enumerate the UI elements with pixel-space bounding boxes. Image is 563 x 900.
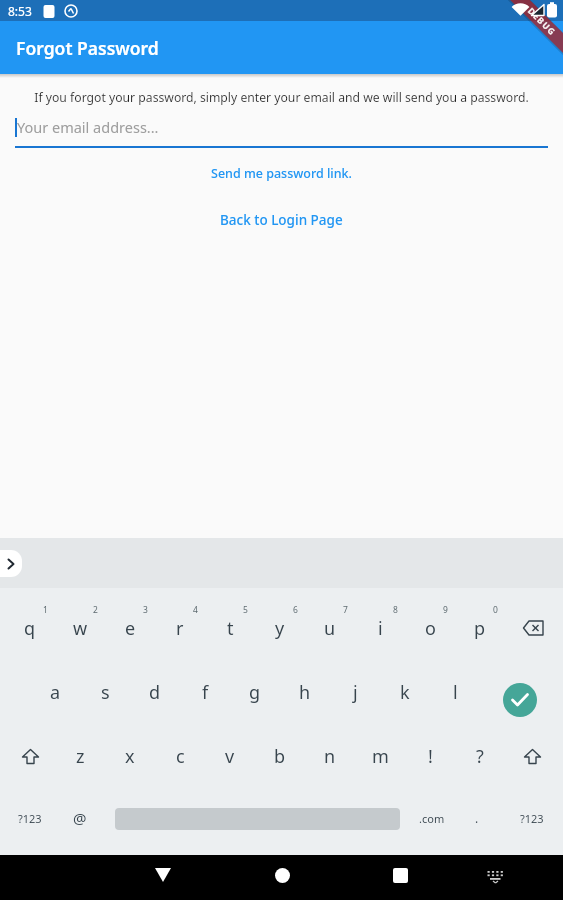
staticText: c (176, 744, 185, 769)
staticText: q (24, 616, 36, 641)
staticText: . (475, 810, 479, 826)
button[interactable]: t (206, 604, 254, 652)
staticText: u (324, 616, 336, 641)
staticText: n (324, 744, 336, 769)
button[interactable]: v (206, 732, 254, 780)
staticText: ?123 (520, 811, 544, 826)
button[interactable]: g (231, 668, 279, 716)
staticText: h (299, 680, 311, 705)
staticText: y (275, 616, 285, 641)
button[interactable]: ? (456, 732, 504, 780)
button[interactable]: ! (406, 732, 454, 780)
button[interactable]: @ (56, 794, 104, 842)
staticText: m (372, 744, 389, 769)
staticText: Send me password link. (211, 165, 352, 182)
button[interactable]: y (256, 604, 304, 652)
staticText: 4 (193, 604, 198, 616)
staticText: Forgot Password (16, 36, 159, 60)
staticText: d (149, 680, 161, 705)
button[interactable]: s (81, 668, 129, 716)
button[interactable]: m (356, 732, 404, 780)
button[interactable]: w (56, 604, 104, 652)
staticText: 3 (143, 604, 148, 616)
button[interactable] (0, 550, 22, 577)
button[interactable]: . (453, 794, 501, 842)
staticText: o (425, 616, 436, 641)
button[interactable]: e (106, 604, 154, 652)
staticText: j (353, 680, 358, 705)
button[interactable]: ?123 (508, 794, 556, 842)
staticText: ?123 (18, 811, 42, 826)
staticText: 8 (393, 604, 398, 616)
button[interactable] (496, 676, 544, 724)
staticText: l (453, 680, 458, 705)
button[interactable]: d (131, 668, 179, 716)
staticText: i (378, 616, 383, 641)
button[interactable] (4, 732, 56, 780)
staticText: w (73, 616, 88, 641)
staticText: If you forgot your password, simply ente… (20, 89, 543, 106)
button[interactable]: n (306, 732, 354, 780)
button[interactable] (506, 732, 558, 780)
staticText: 8:53 (8, 3, 32, 19)
button[interactable]: Back to Login Page (220, 211, 343, 229)
staticText: r (176, 616, 184, 641)
button[interactable]: x (106, 732, 154, 780)
button[interactable]: .com (408, 794, 456, 842)
button[interactable]: Send me password link. (211, 165, 352, 182)
button[interactable] (376, 853, 424, 898)
staticText: ? (476, 744, 484, 769)
staticText: ! (428, 744, 433, 769)
staticText: v (225, 744, 235, 769)
staticText: a (50, 680, 61, 705)
staticText: e (125, 616, 136, 641)
staticText: @ (73, 808, 87, 828)
button[interactable]: k (381, 668, 429, 716)
staticText: t (227, 616, 234, 641)
staticText: 2 (93, 604, 98, 616)
button[interactable]: h (281, 668, 329, 716)
button[interactable]: r (156, 604, 204, 652)
button[interactable] (471, 854, 519, 899)
staticText: .com (419, 811, 445, 826)
staticText: s (101, 680, 110, 705)
button[interactable]: b (256, 732, 304, 780)
staticText: 9 (443, 604, 448, 616)
button[interactable]: z (56, 732, 104, 780)
staticText: DEBUG (525, 5, 559, 39)
staticText: 0 (493, 604, 498, 616)
button[interactable] (258, 853, 306, 898)
staticText: f (202, 680, 209, 705)
staticText: z (76, 744, 85, 769)
button[interactable]: p (456, 604, 504, 652)
staticText: x (125, 744, 135, 769)
button[interactable]: a (31, 668, 79, 716)
staticText: 6 (293, 604, 298, 616)
staticText: b (274, 744, 286, 769)
staticText: k (400, 680, 410, 705)
staticText: Back to Login Page (220, 211, 343, 229)
button[interactable] (506, 604, 562, 652)
button[interactable]: l (431, 668, 479, 716)
staticText: 1 (43, 604, 48, 616)
button[interactable]: c (156, 732, 204, 780)
staticText: 5 (243, 604, 248, 616)
staticText: 7 (343, 604, 348, 616)
button[interactable]: f (181, 668, 229, 716)
staticText: g (249, 680, 261, 705)
button[interactable]: u (306, 604, 354, 652)
staticText: Your email address... (17, 117, 159, 137)
button[interactable]: o (406, 604, 454, 652)
button[interactable]: i (356, 604, 404, 652)
button[interactable]: q (6, 604, 54, 652)
button[interactable]: ?123 (6, 794, 54, 842)
staticText: p (474, 616, 486, 641)
button[interactable] (139, 852, 187, 897)
button[interactable]: j (331, 668, 379, 716)
